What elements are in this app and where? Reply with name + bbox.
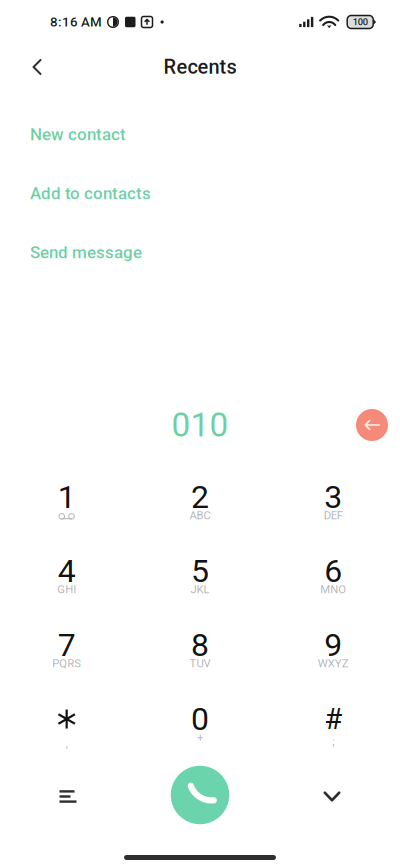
- staticText: Send message: [30, 243, 142, 262]
- staticText: 3: [324, 478, 342, 516]
- staticText: 1: [58, 478, 76, 516]
- staticText: Add to contacts: [30, 184, 151, 203]
- staticText: #: [324, 702, 342, 736]
- staticText: 2: [191, 478, 209, 516]
- staticText: ,: [66, 737, 68, 750]
- button[interactable]: Back: [14, 44, 60, 90]
- staticText: DEF: [324, 509, 343, 522]
- staticText: 7: [58, 626, 76, 664]
- button[interactable]: 8: [133, 610, 267, 684]
- button[interactable]: Hide keypad: [308, 771, 356, 819]
- staticText: 8: [191, 626, 209, 664]
- button[interactable]: Send message: [0, 223, 400, 282]
- button[interactable]: 5: [133, 536, 267, 610]
- staticText: ABC: [189, 509, 210, 522]
- staticText: 010: [171, 405, 228, 445]
- staticText: TUV: [189, 657, 210, 670]
- staticText: 5: [191, 552, 209, 590]
- button[interactable]: New contact: [0, 105, 400, 164]
- button[interactable]: 4: [0, 536, 133, 610]
- staticText: New contact: [30, 125, 126, 144]
- button[interactable]: Add to contacts: [0, 164, 400, 223]
- button[interactable]: 1: [0, 462, 133, 536]
- button[interactable]: Delete: [348, 401, 396, 449]
- button[interactable]: Call: [170, 765, 230, 825]
- staticText: MNO: [320, 583, 346, 596]
- staticText: 8:16 AM: [50, 14, 102, 30]
- staticText: 0: [191, 700, 209, 738]
- button[interactable]: 9: [267, 610, 400, 684]
- staticText: JKL: [190, 583, 209, 596]
- staticText: 4: [58, 552, 76, 590]
- staticText: WXYZ: [318, 657, 349, 670]
- button[interactable]: pound: [267, 684, 400, 758]
- staticText: GHI: [57, 583, 76, 596]
- staticText: Recents: [163, 55, 236, 79]
- staticText: 100: [353, 16, 368, 27]
- staticText: ;: [332, 735, 334, 748]
- staticText: +: [197, 731, 203, 744]
- staticText: 9: [324, 626, 342, 664]
- button[interactable]: 0: [133, 684, 267, 758]
- button[interactable]: 6: [267, 536, 400, 610]
- button[interactable]: 3: [267, 462, 400, 536]
- button[interactable]: 7: [0, 610, 133, 684]
- button[interactable]: star: [0, 684, 133, 758]
- button[interactable]: Dialpad options: [44, 771, 92, 819]
- staticText: 6: [324, 552, 342, 590]
- button[interactable]: 2: [133, 462, 267, 536]
- staticText: PQRS: [52, 657, 81, 670]
